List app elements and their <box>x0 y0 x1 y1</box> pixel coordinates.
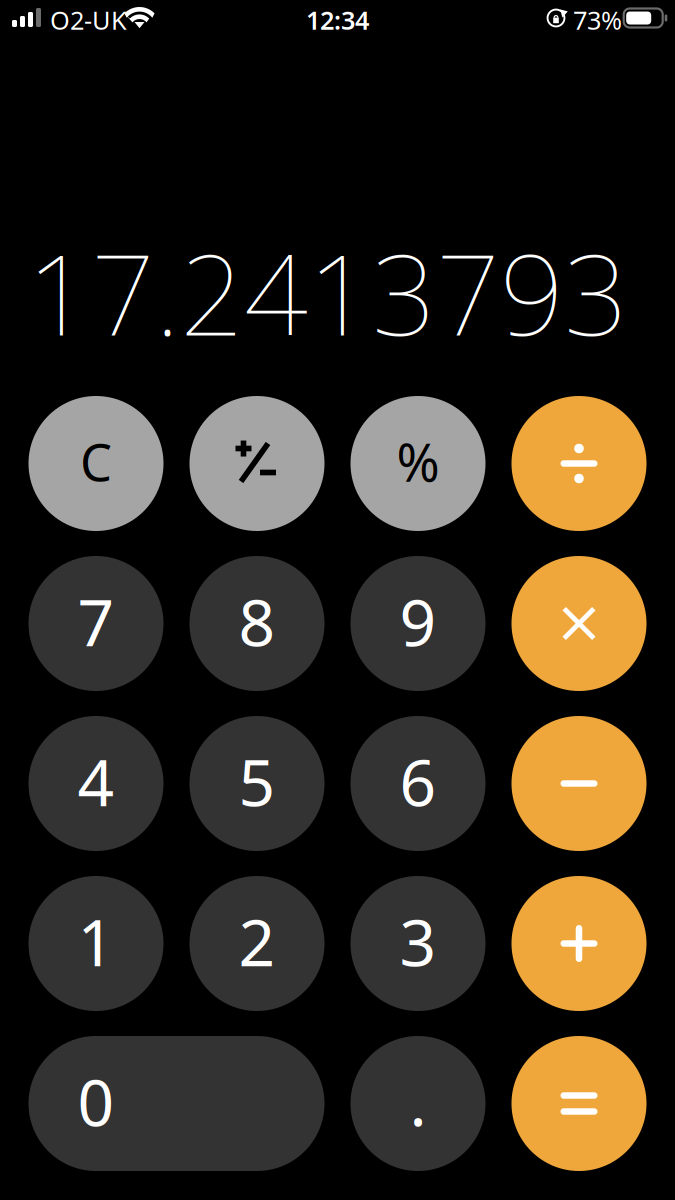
button[interactable]: . <box>350 1036 485 1171</box>
staticText: % <box>396 427 439 496</box>
staticText: 9 <box>399 579 436 664</box>
button[interactable]: 6 <box>350 716 485 851</box>
button[interactable]: 2 <box>189 876 324 1011</box>
button[interactable]: Divide <box>511 396 646 531</box>
button[interactable]: 3 <box>350 876 485 1011</box>
button[interactable]: Plus <box>511 876 646 1011</box>
button[interactable]: 9 <box>350 556 485 691</box>
button[interactable]: 8 <box>189 556 324 691</box>
staticText: 12:34 <box>306 3 369 37</box>
staticText: 4 <box>77 739 114 824</box>
staticText: 5 <box>238 739 275 824</box>
button[interactable]: 4 <box>28 716 163 851</box>
staticText: 2 <box>238 899 275 984</box>
button[interactable]: Equals <box>511 1036 646 1171</box>
button[interactable]: 1 <box>28 876 163 1011</box>
staticText: 1 <box>77 899 114 984</box>
staticText: O2-UK <box>50 3 127 37</box>
staticText: 17.2413793 <box>27 218 628 366</box>
button[interactable]: % <box>350 396 485 531</box>
staticText: . <box>409 1059 426 1144</box>
button[interactable]: 7 <box>28 556 163 691</box>
button[interactable]: Multiply <box>511 556 646 691</box>
button[interactable]: 5 <box>189 716 324 851</box>
staticText: C <box>80 428 112 495</box>
staticText: 7 <box>77 579 114 664</box>
button[interactable]: Plus minus <box>189 396 324 531</box>
staticText: 73% <box>573 3 622 37</box>
staticText: 8 <box>238 579 275 664</box>
staticText: 6 <box>399 739 436 824</box>
button[interactable]: C <box>28 396 163 531</box>
button[interactable]: 0 <box>28 1036 324 1171</box>
button[interactable]: Minus <box>511 716 646 851</box>
staticText: 3 <box>399 899 436 984</box>
staticText: 0 <box>77 1059 114 1144</box>
